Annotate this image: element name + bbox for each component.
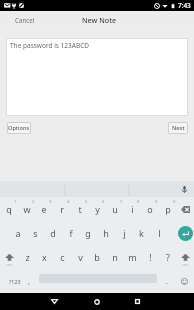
staticText: 7 <box>120 199 123 205</box>
staticText: l <box>158 227 161 239</box>
button[interactable]: w <box>18 197 36 221</box>
staticText: New Note <box>82 15 117 25</box>
button[interactable]: Enter <box>176 221 194 245</box>
button[interactable]: Backspace <box>176 197 194 221</box>
staticText: j <box>123 227 126 239</box>
staticText: m <box>128 251 137 263</box>
staticText: Cancel <box>15 16 35 24</box>
button[interactable]: ! <box>141 245 159 269</box>
staticText: c <box>60 251 65 263</box>
staticText: d <box>50 227 56 239</box>
staticText: n <box>112 251 118 263</box>
button[interactable]: Recents <box>128 293 146 310</box>
staticText: p <box>165 203 171 215</box>
staticText: f <box>69 227 73 239</box>
button[interactable]: n <box>106 245 124 269</box>
staticText: s <box>33 227 38 239</box>
staticText: k <box>139 227 144 239</box>
button[interactable]: x <box>35 245 53 269</box>
staticText: 2 <box>32 199 35 205</box>
staticText: 1 <box>14 199 17 205</box>
staticText: , <box>28 276 31 286</box>
staticText: y <box>95 203 100 215</box>
staticText: 7:43 <box>178 1 191 10</box>
staticText: 9 <box>155 199 158 205</box>
button[interactable]: Emoji <box>175 269 194 293</box>
button[interactable]: k <box>132 221 150 245</box>
button[interactable]: j <box>115 221 133 245</box>
staticText: ?123 <box>9 278 21 285</box>
staticText: t <box>78 203 82 215</box>
button[interactable]: Cancel <box>11 13 39 27</box>
staticText: x <box>42 251 47 263</box>
button[interactable]: m <box>123 245 141 269</box>
staticText: z <box>25 251 30 263</box>
staticText: w <box>23 203 31 215</box>
button[interactable]: Next <box>168 122 188 134</box>
button[interactable]: Shift <box>0 245 18 269</box>
staticText: r <box>60 203 64 215</box>
button[interactable]: ?123 <box>0 269 30 293</box>
staticText: g <box>85 227 91 239</box>
staticText: 5 <box>85 199 88 205</box>
button[interactable]: Voice input <box>178 183 191 196</box>
staticText: v <box>78 251 83 263</box>
button[interactable]: ? <box>159 245 177 269</box>
button[interactable]: u <box>106 197 124 221</box>
button[interactable]: z <box>18 245 36 269</box>
staticText: 3 <box>49 199 52 205</box>
button[interactable]: v <box>71 245 89 269</box>
button[interactable]: Home <box>88 293 106 310</box>
button[interactable]: f <box>62 221 80 245</box>
staticText: q <box>6 203 12 215</box>
button[interactable]: e <box>35 197 53 221</box>
button[interactable]: Back <box>45 293 63 310</box>
button[interactable]: q <box>0 197 18 221</box>
button[interactable]: g <box>79 221 97 245</box>
staticText: o <box>147 203 153 215</box>
button[interactable]: h <box>97 221 115 245</box>
button[interactable]: c <box>53 245 71 269</box>
staticText: e <box>41 203 47 215</box>
staticText: 0 <box>173 199 176 205</box>
staticText: Next <box>172 124 185 132</box>
staticText: The password is 123ABCD <box>10 41 90 50</box>
button[interactable]: d <box>44 221 62 245</box>
staticText: 8 <box>137 199 140 205</box>
button[interactable]: a <box>9 221 27 245</box>
staticText: 6 <box>102 199 105 205</box>
button[interactable]: Shift right <box>176 245 194 269</box>
button[interactable]: Options <box>7 122 31 134</box>
staticText: i <box>131 203 134 215</box>
staticText: 4 <box>67 199 70 205</box>
button[interactable]: r <box>53 197 71 221</box>
button[interactable]: y <box>88 197 106 221</box>
staticText: a <box>15 227 21 239</box>
staticText: u <box>112 203 118 215</box>
button[interactable]: , <box>22 269 37 293</box>
button[interactable]: s <box>26 221 44 245</box>
button[interactable]: o <box>141 197 159 221</box>
button[interactable]: The password is 123ABCD <box>6 38 188 116</box>
staticText: Options <box>8 124 30 132</box>
staticText: b <box>94 251 100 263</box>
staticText: . <box>166 276 169 286</box>
button[interactable]: i <box>123 197 141 221</box>
button[interactable]: p <box>159 197 177 221</box>
button[interactable]: . <box>159 269 175 293</box>
button[interactable]: b <box>88 245 106 269</box>
button[interactable]: t <box>71 197 89 221</box>
staticText: h <box>103 227 109 239</box>
staticText: ? <box>166 251 170 263</box>
staticText: ! <box>149 251 152 263</box>
button[interactable]: l <box>150 221 168 245</box>
